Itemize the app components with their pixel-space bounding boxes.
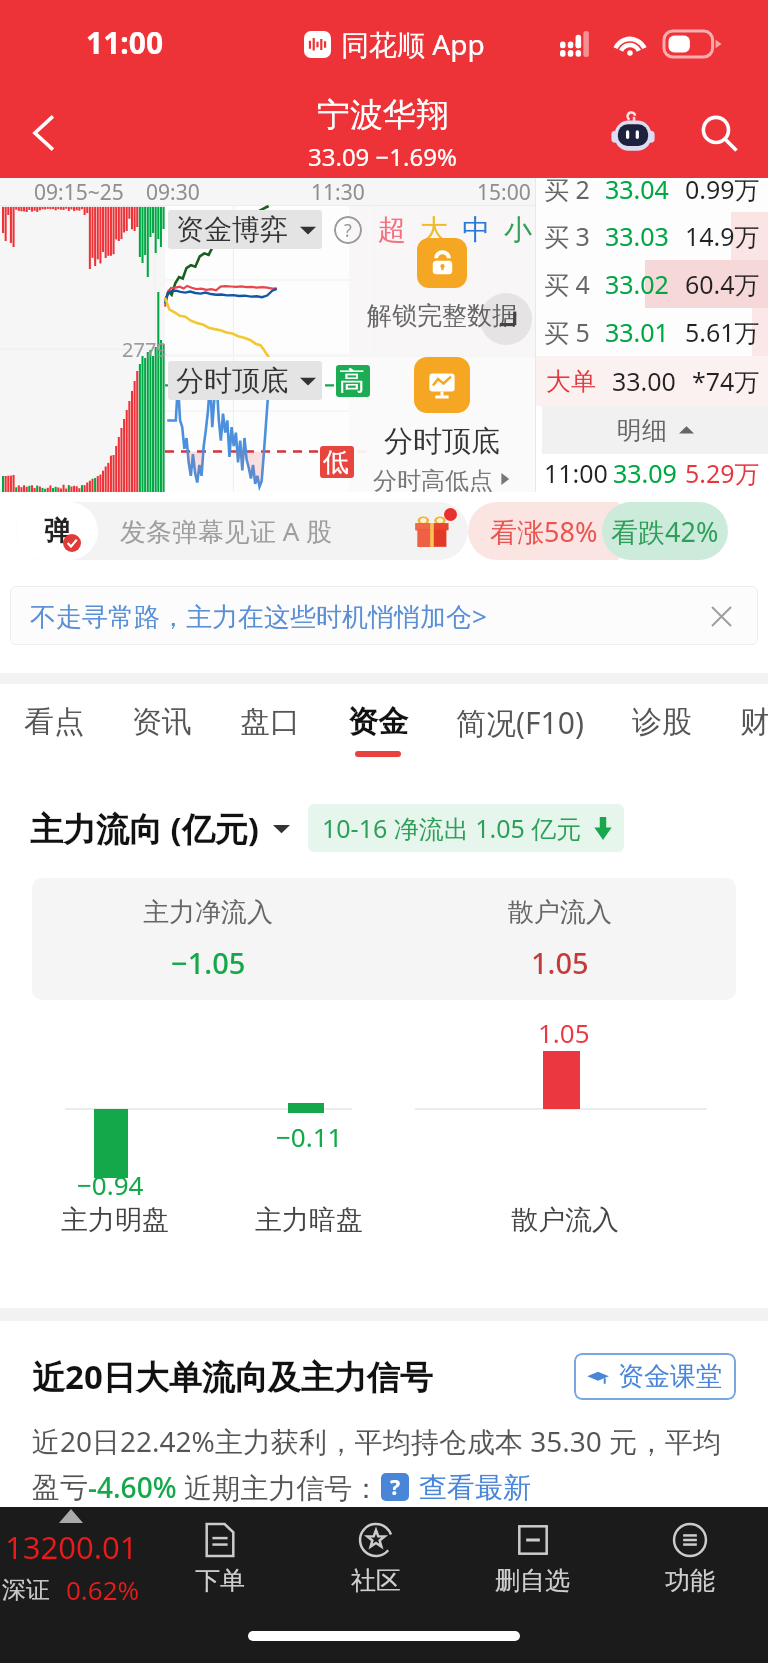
staticText: −1.05	[171, 943, 246, 982]
button[interactable]: 诊股	[608, 684, 716, 776]
staticText: ?	[344, 218, 352, 243]
staticText: 高低	[339, 365, 370, 397]
button[interactable]: AI assistant	[604, 104, 662, 162]
staticText: 主力净流入	[143, 896, 273, 929]
staticText: 33.04	[605, 172, 669, 206]
button[interactable]: 看涨58%	[468, 502, 620, 560]
button[interactable]: 下单	[142, 1521, 298, 1596]
staticText: 60.4万	[685, 267, 760, 301]
staticText: 买 2	[544, 172, 590, 206]
staticText: 功能	[665, 1565, 715, 1596]
staticText: 散户流入	[511, 1203, 619, 1237]
button[interactable]: 10-16 净流出 1.05 亿元	[308, 804, 624, 852]
staticText: 1.05	[538, 1015, 590, 1050]
button[interactable]: Close	[704, 599, 738, 633]
staticText: −0.94	[77, 1167, 144, 1202]
staticText: 大	[420, 212, 448, 247]
button[interactable]: 资讯	[108, 684, 216, 776]
staticText: 财	[740, 703, 744, 741]
staticText: 资金	[348, 703, 408, 741]
button[interactable]: 简况(F10)	[432, 684, 608, 776]
staticText: 33.00	[612, 364, 676, 398]
staticText: 下单	[195, 1565, 245, 1596]
staticText: 散户流入	[508, 896, 612, 929]
button[interactable]: 分时顶底	[168, 361, 322, 400]
staticText: 11:00	[86, 22, 164, 63]
button[interactable]: 不走寻常路，主力在这些时机悄悄加仓>	[10, 586, 758, 645]
staticText: 分时顶底	[176, 363, 288, 398]
staticText: 发条弹幕见证 A 股	[120, 513, 333, 549]
staticText: 删自选	[495, 1565, 570, 1596]
staticText: 2779	[122, 336, 168, 363]
staticText: 中	[462, 212, 490, 247]
button[interactable]: Help	[334, 216, 362, 244]
staticText: 资金博弈	[176, 212, 288, 247]
button[interactable]: Intraday chart	[414, 357, 470, 413]
button[interactable]: 资金	[324, 684, 432, 776]
staticText: 分时顶底	[384, 423, 500, 460]
button[interactable]: 13200.01	[0, 1509, 142, 1607]
button[interactable]: 资金课堂	[574, 1353, 736, 1400]
staticText: 分时高低点	[373, 466, 493, 492]
button[interactable]: 财	[716, 684, 768, 776]
staticText: 买 5	[544, 315, 590, 349]
staticText: 10-16 净流出 1.05 亿元	[322, 811, 582, 845]
staticText: 0.62%	[66, 1572, 140, 1607]
staticText: 社区	[351, 1565, 401, 1596]
staticText: 买 3	[544, 219, 590, 253]
staticText: 盘口	[240, 703, 300, 741]
staticText: 11:00	[544, 456, 608, 490]
staticText: 33.09	[613, 456, 677, 490]
staticText: 11:30	[311, 178, 365, 206]
staticText: 5.61万	[685, 315, 760, 349]
staticText: 解锁完整数据	[367, 300, 517, 331]
button[interactable]: Unlock	[417, 238, 467, 288]
button[interactable]: 盘口	[216, 684, 324, 776]
staticText: 资讯	[132, 703, 192, 741]
button[interactable]: 弹	[16, 502, 468, 560]
staticText: 超	[378, 212, 406, 247]
staticText: 不走寻常路，主力在这些时机悄悄加仓>	[30, 598, 487, 634]
staticText: 33.03	[605, 219, 669, 253]
staticText: 大单	[546, 366, 596, 397]
staticText: 主力流向 (亿元)	[30, 806, 259, 851]
button[interactable]: 主力流向 (亿元)	[30, 806, 290, 851]
staticText: 14.9万	[685, 219, 760, 253]
staticText: −0.11	[276, 1119, 343, 1154]
staticText: 1.05	[531, 943, 589, 982]
staticText: ?	[390, 1473, 401, 1501]
staticText: 5.29万	[685, 456, 760, 490]
staticText: 诊股	[632, 703, 692, 741]
staticText: 买 4	[544, 267, 590, 301]
staticText: 小	[504, 212, 532, 247]
staticText: 查看最新	[419, 1470, 531, 1505]
staticText: 13200.01	[5, 1526, 138, 1568]
staticText: 主力明盘	[61, 1203, 169, 1237]
button[interactable]: Back	[16, 104, 74, 162]
staticText: 33.01	[605, 315, 669, 349]
staticText: 深证	[2, 1575, 50, 1605]
staticText: 同花顺 App	[341, 25, 485, 63]
staticText: 弹	[44, 514, 71, 548]
button[interactable]: 看点	[0, 684, 108, 776]
staticText: 主力暗盘	[255, 1203, 363, 1237]
staticText: 资金课堂	[618, 1360, 722, 1393]
button[interactable]: 看跌42%	[602, 502, 728, 560]
button[interactable]: 社区	[298, 1521, 454, 1596]
button[interactable]: 明细	[542, 406, 768, 454]
button[interactable]: 删自选	[454, 1521, 611, 1596]
staticText: 看点	[24, 703, 84, 741]
staticText: 33.09 −1.69%	[308, 140, 457, 173]
staticText: 明细	[617, 415, 667, 446]
staticText: -4.60%	[88, 1468, 177, 1506]
button[interactable]: 查看最新	[419, 1470, 531, 1505]
button[interactable]: 资金博弈	[168, 210, 322, 249]
staticText: 宁波华翔	[317, 94, 449, 136]
staticText: 近期主力信号：	[177, 1468, 381, 1506]
button[interactable]: 功能	[611, 1521, 768, 1596]
staticText: 低低	[323, 446, 354, 478]
staticText: 看跌42%	[611, 513, 719, 550]
staticText: 33.02	[605, 267, 669, 301]
staticText: 看涨58%	[490, 513, 598, 550]
button[interactable]: Search	[690, 104, 748, 162]
